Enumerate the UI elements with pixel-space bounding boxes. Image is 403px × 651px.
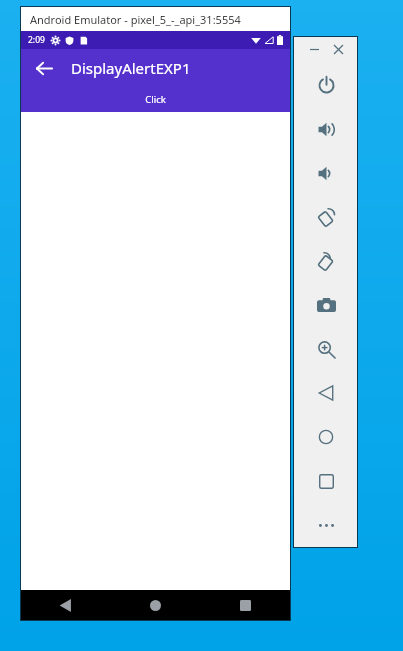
button[interactable]: Close — [328, 39, 348, 59]
button[interactable]: Volume up — [304, 107, 348, 151]
button[interactable]: Zoom — [304, 327, 348, 371]
button[interactable]: Rotate right — [304, 239, 348, 283]
button[interactable]: Rotate left — [304, 195, 348, 239]
button[interactable]: Home — [110, 590, 200, 620]
button[interactable]: Minimize — [304, 39, 324, 59]
button[interactable]: Overview — [304, 459, 348, 503]
button[interactable]: Back — [304, 371, 348, 415]
button[interactable]: Recents — [200, 590, 290, 620]
button[interactable]: Screenshot — [304, 283, 348, 327]
button[interactable]: Back — [21, 590, 110, 620]
button[interactable]: Power — [304, 63, 348, 107]
staticText: Android Emulator - pixel_5_-_api_31:5554 — [30, 12, 241, 27]
button[interactable]: More — [304, 503, 348, 547]
staticText: DisplayAlertEXP1 — [71, 58, 191, 78]
staticText: 2:09 — [28, 34, 45, 46]
button[interactable]: Back — [29, 53, 59, 83]
button[interactable]: Volume down — [304, 151, 348, 195]
staticText: Click — [145, 93, 166, 106]
button[interactable]: Home — [304, 415, 348, 459]
button[interactable]: Click — [21, 87, 290, 112]
